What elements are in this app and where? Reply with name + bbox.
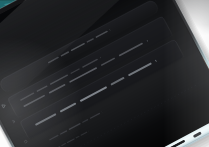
button[interactable]: Phone showing dark app screen <box>0 0 209 147</box>
